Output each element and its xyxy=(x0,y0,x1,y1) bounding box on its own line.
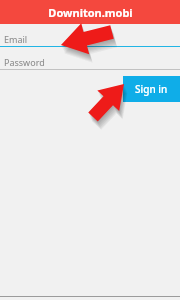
staticText: Downiton.mobi xyxy=(48,5,133,20)
staticText: Password xyxy=(4,56,45,68)
button[interactable]: Password xyxy=(0,55,180,69)
staticText: Sign in xyxy=(135,82,168,96)
button[interactable]: Email xyxy=(0,32,180,46)
button[interactable]: Sign in xyxy=(123,76,180,102)
staticText: Email xyxy=(4,33,28,45)
button[interactable]: Downiton.mobi xyxy=(0,0,180,24)
other: Annotation arrows xyxy=(0,0,180,300)
